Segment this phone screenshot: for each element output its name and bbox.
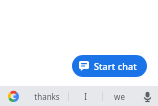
button[interactable]: Voice input (136, 86, 158, 106)
staticText: we (114, 91, 125, 102)
staticText: thanks (34, 91, 60, 102)
button[interactable]: thanks (26, 86, 68, 106)
staticText: Start chat (94, 60, 137, 72)
button[interactable]: we (103, 86, 136, 106)
button[interactable]: I (69, 86, 102, 106)
button[interactable]: Google search (0, 86, 26, 106)
button[interactable]: Start chat (72, 55, 147, 77)
staticText: I (84, 91, 87, 102)
